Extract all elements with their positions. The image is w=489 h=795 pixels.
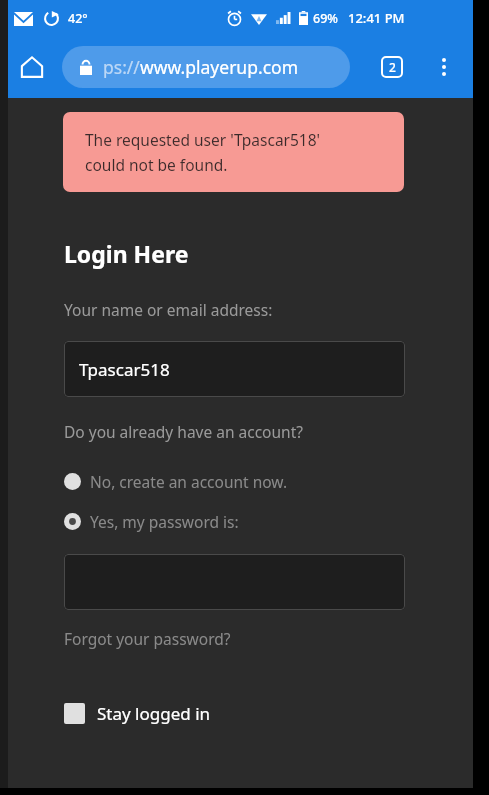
staticText: 69% bbox=[313, 10, 338, 27]
staticText: No, create an account now. bbox=[90, 471, 288, 492]
staticText: Login Here bbox=[64, 238, 189, 269]
staticText: 2 bbox=[389, 59, 396, 75]
staticText: 42° bbox=[68, 10, 88, 27]
staticText: Stay logged in bbox=[97, 702, 211, 725]
button[interactable]: Forgot your password? bbox=[64, 628, 231, 649]
button[interactable]: ps:// bbox=[62, 46, 350, 88]
button[interactable] bbox=[64, 554, 405, 610]
button[interactable]: Yes, my password is: bbox=[64, 506, 239, 536]
button[interactable]: Stay logged in bbox=[64, 697, 211, 729]
staticText: The requested user 'Tpascar518' could no… bbox=[85, 129, 321, 175]
button[interactable]: More options bbox=[424, 47, 464, 87]
staticText: 12:41 PM bbox=[348, 9, 405, 27]
staticText: Tpascar518 bbox=[79, 358, 170, 381]
button[interactable]: Tpascar518 bbox=[64, 341, 405, 397]
staticText: Your name or email address: bbox=[64, 299, 273, 320]
staticText: Yes, my password is: bbox=[90, 511, 239, 532]
staticText: ps:// bbox=[103, 55, 140, 79]
button[interactable]: Home bbox=[10, 45, 54, 89]
button[interactable]: No, create an account now. bbox=[64, 466, 288, 496]
staticText: www.playerup.com bbox=[140, 55, 298, 79]
staticText: Do you already have an account? bbox=[64, 421, 303, 442]
button[interactable]: Tabs, 2 open bbox=[372, 47, 412, 87]
